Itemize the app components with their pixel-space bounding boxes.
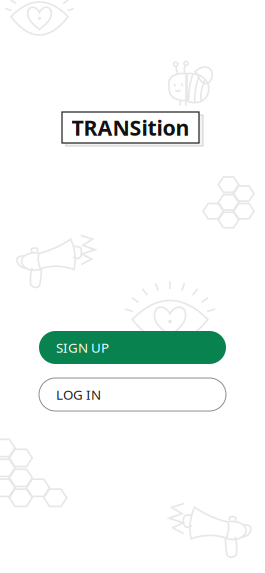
- staticText: TRANSition: [71, 113, 189, 142]
- staticText: LOG IN: [56, 386, 101, 403]
- staticText: SIGN UP: [56, 339, 109, 356]
- button[interactable]: LOG IN: [39, 378, 226, 411]
- button[interactable]: SIGN UP: [39, 331, 226, 364]
